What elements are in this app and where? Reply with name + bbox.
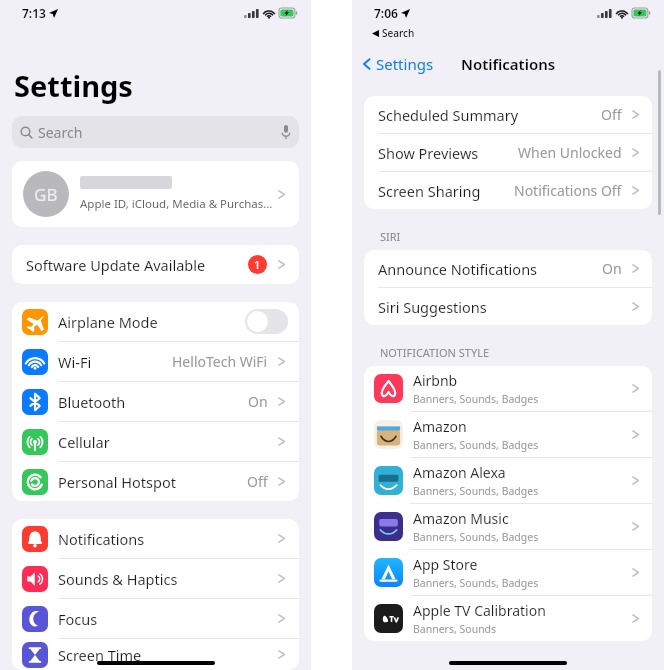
staticText: Airplane Mode — [58, 312, 158, 332]
staticText: 1 — [254, 257, 261, 272]
staticText: App Store — [413, 555, 478, 574]
staticText: Banners, Sounds, Badges — [413, 484, 539, 498]
staticText: Notifications — [58, 529, 145, 549]
staticText: Amazon Alexa — [413, 463, 506, 482]
button[interactable]: Settings — [352, 51, 442, 77]
staticText: Amazon Music — [413, 509, 509, 528]
staticText: Settings — [376, 54, 434, 74]
button[interactable]: Software Update Available — [12, 245, 299, 284]
button[interactable]: Personal Hotspot — [12, 462, 299, 501]
button[interactable]: Amazon Music — [364, 504, 652, 549]
staticText: HelloTech WiFi — [172, 352, 268, 371]
staticText: Off — [601, 105, 622, 124]
staticText: Banners, Sounds, Badges — [413, 576, 539, 590]
staticText: Software Update Available — [26, 255, 206, 275]
staticText: Settings — [14, 66, 133, 105]
staticText: Bluetooth — [58, 392, 126, 412]
staticText: Search — [382, 26, 415, 40]
button[interactable]: Screen Sharing — [364, 172, 652, 209]
staticText: Sounds & Haptics — [58, 569, 178, 589]
button[interactable]: Search — [12, 116, 299, 148]
staticText: Banners, Sounds — [413, 622, 497, 636]
staticText: Notifications — [461, 54, 556, 74]
button[interactable]: Notifications — [12, 519, 299, 558]
button[interactable]: Airbnb — [364, 366, 652, 411]
staticText: On — [248, 392, 268, 411]
button[interactable]: Airplane Mode toggle — [245, 309, 288, 334]
staticText: GB — [34, 183, 58, 206]
button[interactable]: Wi-Fi — [12, 342, 299, 381]
button[interactable]: Bluetooth — [12, 382, 299, 421]
button[interactable]: GB — [12, 161, 299, 227]
staticText: Focus — [58, 609, 98, 629]
button[interactable]: Scheduled Summary — [364, 96, 652, 133]
staticText: Siri Suggestions — [378, 297, 487, 317]
staticText: Banners, Sounds, Badges — [413, 530, 539, 544]
button[interactable]: Amazon Alexa — [364, 458, 652, 503]
staticText: Personal Hotspot — [58, 472, 176, 492]
staticText: 7:06 — [374, 5, 398, 21]
staticText: Airbnb — [413, 371, 458, 390]
staticText: SIRI — [380, 229, 401, 244]
staticText: On — [602, 259, 622, 278]
staticText: Apple ID, iCloud, Media & Purchas… — [80, 196, 273, 212]
button[interactable]: Screen Time — [12, 639, 299, 670]
button[interactable]: Cellular — [12, 422, 299, 461]
button[interactable]: Sounds & Haptics — [12, 559, 299, 598]
button[interactable]: App Store — [364, 550, 652, 595]
staticText: Cellular — [58, 432, 110, 452]
staticText: Off — [247, 472, 268, 491]
staticText: When Unlocked — [518, 143, 622, 162]
staticText: Wi-Fi — [58, 352, 92, 372]
staticText: Announce Notifications — [378, 259, 538, 279]
button[interactable]: Siri Suggestions — [364, 288, 652, 325]
staticText: 7:13 — [22, 5, 46, 21]
staticText: Search — [38, 123, 83, 142]
staticText: Show Previews — [378, 143, 479, 163]
staticText: Screen Sharing — [378, 181, 481, 201]
staticText: Amazon — [413, 417, 467, 436]
button[interactable]: Announce Notifications — [364, 250, 652, 287]
button[interactable]: Amazon — [364, 412, 652, 457]
staticText: NOTIFICATION STYLE — [380, 345, 490, 360]
staticText: Screen Time — [58, 645, 142, 665]
staticText: Scheduled Summary — [378, 105, 519, 125]
button[interactable]: Apple TV Calibration — [364, 596, 652, 641]
staticText: Apple TV Calibration — [413, 601, 546, 620]
button[interactable]: Show Previews — [364, 134, 652, 171]
button[interactable]: Focus — [12, 599, 299, 638]
staticText: Banners, Sounds, Badges — [413, 392, 539, 406]
button[interactable]: Airplane Mode — [12, 302, 299, 341]
staticText: Notifications Off — [514, 181, 622, 200]
staticText: Banners, Sounds, Badges — [413, 438, 539, 452]
